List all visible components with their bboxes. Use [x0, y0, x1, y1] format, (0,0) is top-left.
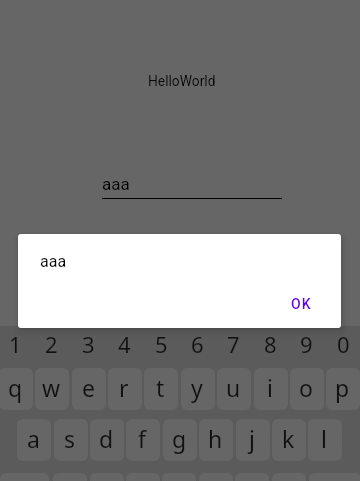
staticText: 0 [337, 329, 350, 353]
button[interactable]: OK [280, 289, 322, 319]
staticText: o [299, 372, 313, 403]
button[interactable]: 2 [33, 329, 69, 353]
button[interactable]: k [272, 419, 306, 461]
staticText: l [321, 423, 327, 454]
staticText: y [191, 372, 203, 403]
staticText: w [42, 372, 61, 403]
staticText: 3 [82, 329, 95, 353]
staticText: 1 [9, 329, 22, 353]
staticText: OK [291, 296, 312, 312]
button[interactable]: s [54, 419, 88, 461]
button[interactable]: d [90, 419, 124, 461]
staticText: h [208, 423, 223, 454]
button[interactable]: p [326, 368, 360, 410]
staticText: HelloWorld [148, 73, 216, 89]
staticText: d [99, 423, 114, 454]
staticText: 5 [155, 329, 168, 353]
staticText: f [138, 423, 146, 454]
button[interactable]: e [72, 368, 106, 410]
button[interactable]: l [308, 419, 342, 461]
button[interactable]: h [199, 419, 233, 461]
staticText: aaa [40, 252, 67, 271]
button[interactable]: g [163, 419, 197, 461]
staticText: t [156, 372, 165, 403]
button[interactable]: 0 [325, 329, 360, 353]
staticText: g [172, 423, 187, 454]
staticText: 9 [300, 329, 313, 353]
button[interactable]: i [254, 368, 288, 410]
staticText: a [27, 423, 40, 454]
staticText: k [282, 423, 295, 454]
staticText: s [64, 423, 76, 454]
button[interactable]: a [17, 419, 51, 461]
button[interactable]: 3 [70, 329, 106, 353]
staticText: j [249, 423, 255, 454]
button[interactable]: 7 [215, 329, 251, 353]
staticText: 8 [264, 329, 277, 353]
button[interactable]: 5 [143, 329, 179, 353]
button[interactable]: 9 [288, 329, 324, 353]
button[interactable]: 1 [0, 329, 33, 353]
button[interactable]: u [217, 368, 251, 410]
button[interactable]: o [290, 368, 324, 410]
staticText: i [267, 372, 273, 403]
button[interactable]: 4 [106, 329, 142, 353]
staticText: u [226, 372, 241, 403]
button[interactable]: j [236, 419, 270, 461]
button[interactable]: r [108, 368, 142, 410]
staticText: 4 [118, 329, 131, 353]
staticText: 2 [45, 329, 58, 353]
button[interactable]: y [181, 368, 215, 410]
staticText: r [119, 372, 129, 403]
button[interactable]: q [0, 368, 33, 410]
button[interactable]: 6 [179, 329, 215, 353]
button[interactable]: w [35, 368, 69, 410]
staticText: p [335, 372, 350, 403]
button[interactable]: f [126, 419, 160, 461]
staticText: q [8, 372, 23, 403]
button[interactable]: 8 [252, 329, 288, 353]
staticText: aaa [102, 174, 130, 194]
staticText: 6 [191, 329, 204, 353]
button[interactable]: t [144, 368, 178, 410]
staticText: 7 [227, 329, 240, 353]
staticText: e [82, 372, 95, 403]
